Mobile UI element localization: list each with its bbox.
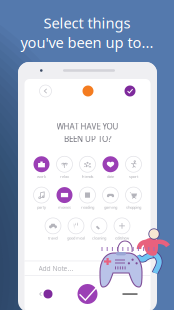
staticText: Add Note... [38, 264, 73, 273]
staticText: party [37, 205, 46, 210]
staticText: you've been up to... [20, 32, 153, 52]
button[interactable]: travel [41, 218, 64, 241]
button[interactable]: good meal [64, 218, 87, 241]
button[interactable]: reading [76, 187, 99, 210]
button[interactable]: cleaning [87, 218, 110, 241]
button[interactable]: work [30, 156, 53, 179]
staticText: BEEN UP TO? [64, 134, 111, 144]
staticText: movies [58, 205, 71, 210]
button[interactable]: relax [53, 156, 76, 179]
staticText: WHAT HAVE YOU [56, 121, 118, 132]
staticText: gaming [104, 205, 117, 210]
button[interactable]: date [99, 156, 122, 179]
button[interactable]: edit/new [110, 218, 133, 241]
staticText: travel [48, 235, 58, 241]
staticText: Select things [43, 13, 130, 32]
staticText: good meal [67, 235, 85, 241]
button[interactable]: movies [53, 187, 76, 210]
staticText: friends [81, 174, 93, 179]
button[interactable]: party [30, 187, 53, 210]
staticText: reading [81, 205, 94, 210]
button[interactable]: sport [122, 156, 145, 179]
button[interactable]: Back [39, 85, 51, 97]
staticText: cleaning [92, 235, 106, 241]
button[interactable]: shopping [122, 187, 145, 210]
button[interactable]: gaming [99, 187, 122, 210]
staticText: work [37, 174, 46, 179]
button[interactable]: Done [77, 284, 97, 304]
staticText: relax [60, 174, 69, 179]
button[interactable]: friends [76, 156, 99, 179]
staticText: edit/new [115, 235, 129, 241]
button[interactable]: Confirm [124, 85, 135, 96]
staticText: shopping [126, 205, 141, 210]
staticText: sport [129, 174, 138, 179]
staticText: date [107, 174, 114, 179]
